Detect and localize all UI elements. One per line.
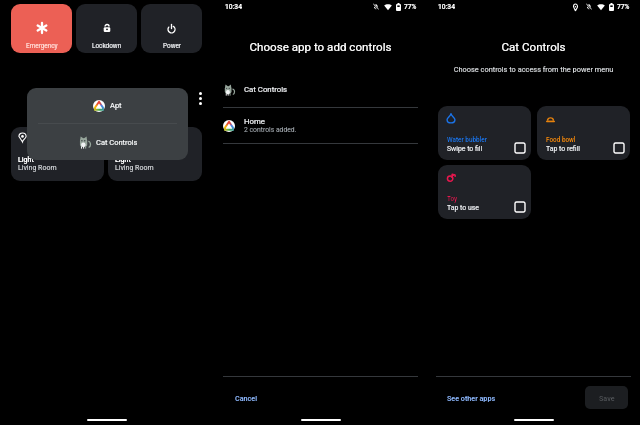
staticText: 10:34 bbox=[438, 3, 455, 11]
staticText: Tap to refill bbox=[546, 145, 580, 153]
button[interactable]: Cat Controls bbox=[27, 124, 188, 160]
staticText: Choose controls to access from the power… bbox=[427, 65, 640, 74]
staticText: Toy bbox=[447, 195, 458, 203]
button[interactable]: Lockdown bbox=[76, 4, 137, 53]
button[interactable]: Cat Controls bbox=[214, 72, 427, 107]
staticText: 77% bbox=[617, 3, 630, 11]
button[interactable]: Food bowl bbox=[537, 106, 630, 160]
button[interactable]: Power bbox=[141, 4, 202, 53]
button[interactable]: Light bbox=[108, 127, 202, 181]
staticText: Home bbox=[244, 117, 265, 126]
staticText: Light bbox=[18, 156, 34, 164]
staticText: Food bowl bbox=[546, 136, 576, 144]
staticText: Emergency bbox=[26, 42, 58, 50]
button[interactable]: Emergency bbox=[11, 4, 72, 53]
staticText: Living Room bbox=[18, 164, 57, 172]
staticText: Cat Controls bbox=[244, 85, 288, 94]
staticText: Apt bbox=[110, 101, 122, 110]
staticText: Cat Controls bbox=[427, 40, 640, 54]
staticText: Power bbox=[163, 42, 181, 50]
button[interactable]: More options bbox=[194, 88, 206, 108]
button[interactable]: Save bbox=[585, 386, 628, 409]
button[interactable]: Toy bbox=[438, 165, 531, 219]
button[interactable]: Apt bbox=[27, 88, 188, 123]
staticText: Tap to use bbox=[447, 204, 479, 212]
staticText: Swipe to fill bbox=[447, 145, 483, 153]
staticText: 2 controls added. bbox=[244, 126, 297, 134]
staticText: Choose app to add controls bbox=[214, 40, 427, 54]
staticText: 10:34 bbox=[225, 3, 242, 11]
button[interactable]: Light bbox=[11, 127, 104, 181]
button[interactable]: See other apps bbox=[444, 391, 499, 405]
staticText: Lockdown bbox=[92, 42, 122, 50]
staticText: See other apps bbox=[447, 394, 496, 402]
staticText: Water bubbler bbox=[447, 136, 488, 144]
button[interactable]: Home bbox=[214, 108, 427, 143]
button[interactable]: Water bubbler bbox=[438, 106, 531, 160]
staticText: Living Room bbox=[115, 164, 154, 172]
staticText: 77% bbox=[404, 3, 417, 11]
staticText: Save bbox=[599, 394, 615, 402]
button[interactable]: Cancel bbox=[232, 391, 261, 405]
staticText: Cat Controls bbox=[96, 138, 138, 147]
staticText: Light bbox=[115, 156, 131, 164]
staticText: Cancel bbox=[235, 394, 258, 402]
